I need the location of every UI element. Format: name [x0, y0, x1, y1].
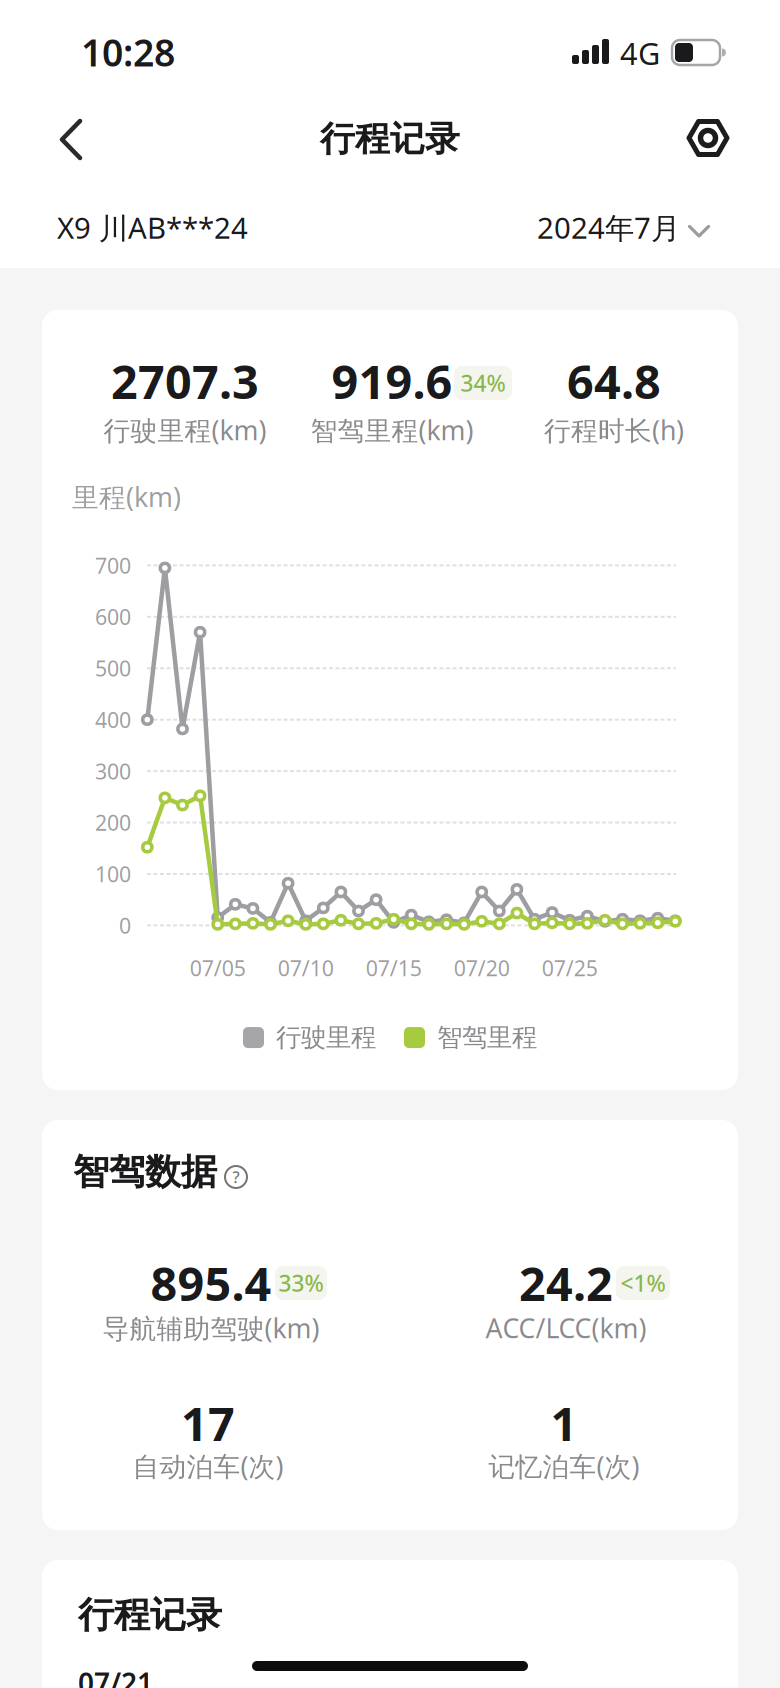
staticText: 自动泊车(次) [132, 1448, 283, 1484]
staticText: 0 [119, 911, 131, 939]
staticText: 行程时长(h) [544, 412, 684, 448]
staticText: 33% [278, 1268, 323, 1298]
staticText: 24.2 [519, 1252, 613, 1314]
button[interactable]: Back [60, 117, 84, 162]
staticText: 700 [95, 551, 131, 579]
staticText: 895.4 [150, 1252, 271, 1314]
staticText: 行程记录 [78, 1593, 222, 1637]
staticText: 行驶里程 [276, 1022, 376, 1053]
staticText: <1% [620, 1268, 665, 1298]
staticText: 10:28 [81, 27, 175, 77]
staticText: 智驾里程(km) [310, 412, 473, 448]
staticText: 导航辅助驾驶(km) [102, 1310, 319, 1346]
staticText: 行驶里程(km) [103, 412, 266, 448]
staticText: 07/10 [278, 954, 334, 982]
staticText: 17 [181, 1392, 235, 1454]
button[interactable]: 2024年7月 [537, 208, 710, 247]
staticText: 34% [460, 368, 505, 398]
staticText: 100 [95, 860, 131, 888]
staticText: 1 [550, 1392, 577, 1454]
staticText: 200 [95, 808, 131, 837]
button[interactable]: Settings [687, 119, 729, 157]
staticText: 2707.3 [111, 350, 259, 412]
staticText: 智驾里程 [437, 1022, 537, 1053]
button[interactable]: About smart driving data [225, 1166, 247, 1188]
staticText: ? [232, 1166, 239, 1188]
staticText: 400 [95, 705, 131, 734]
staticText: ACC/LCC(km) [485, 1310, 646, 1346]
staticText: 600 [95, 603, 131, 631]
staticText: 07/25 [542, 954, 598, 982]
staticText: 64.8 [567, 350, 661, 412]
staticText: 07/21 [78, 1664, 153, 1688]
staticText: 智驾数据 [73, 1150, 217, 1194]
staticText: 4G [620, 33, 660, 73]
staticText: 919.6 [331, 350, 452, 412]
staticText: 07/20 [454, 954, 510, 982]
staticText: 500 [95, 654, 131, 682]
staticText: 07/15 [366, 954, 422, 982]
staticText: 里程(km) [72, 479, 181, 514]
staticText: 07/05 [190, 954, 246, 982]
staticText: 300 [95, 757, 131, 785]
staticText: 2024年7月 [537, 208, 680, 247]
staticText: 记忆泊车(次) [488, 1448, 639, 1484]
staticText: 行程记录 [320, 118, 460, 160]
staticText: X9 川AB***24 [57, 208, 248, 247]
